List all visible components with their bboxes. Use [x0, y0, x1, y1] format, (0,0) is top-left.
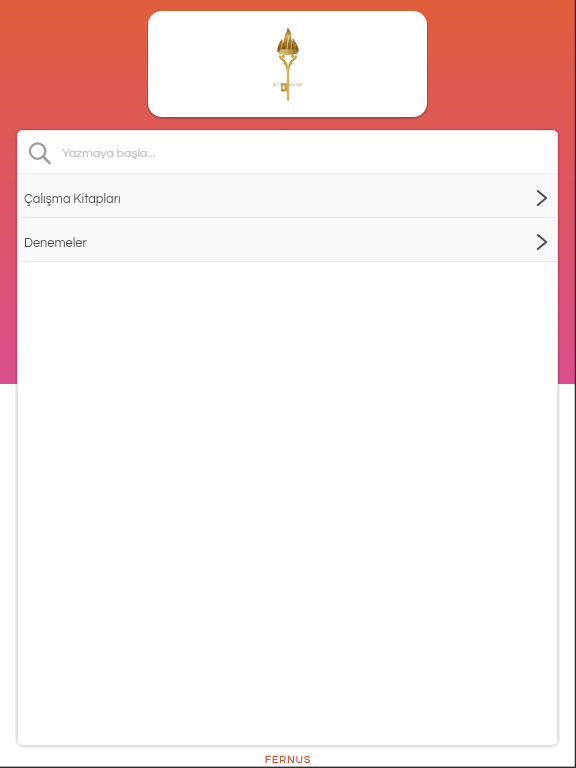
staticText: Çalışma Kitapları: [24, 193, 121, 206]
button[interactable]: Çalışma Kitapları: [17, 174, 558, 217]
other: Open: [531, 187, 553, 209]
staticText: FERNUS: [265, 755, 312, 765]
staticText: Denemeler: [24, 237, 87, 250]
other: Search: [28, 142, 52, 166]
button[interactable]: Search: [17, 130, 558, 173]
staticText: ALTIN ANAHTAR: [273, 83, 303, 87]
other: Open: [531, 231, 553, 253]
button[interactable]: ALTIN ANAHTAR: [148, 11, 427, 117]
staticText: Yazmaya başla...: [62, 147, 156, 160]
button[interactable]: Denemeler: [17, 218, 558, 261]
